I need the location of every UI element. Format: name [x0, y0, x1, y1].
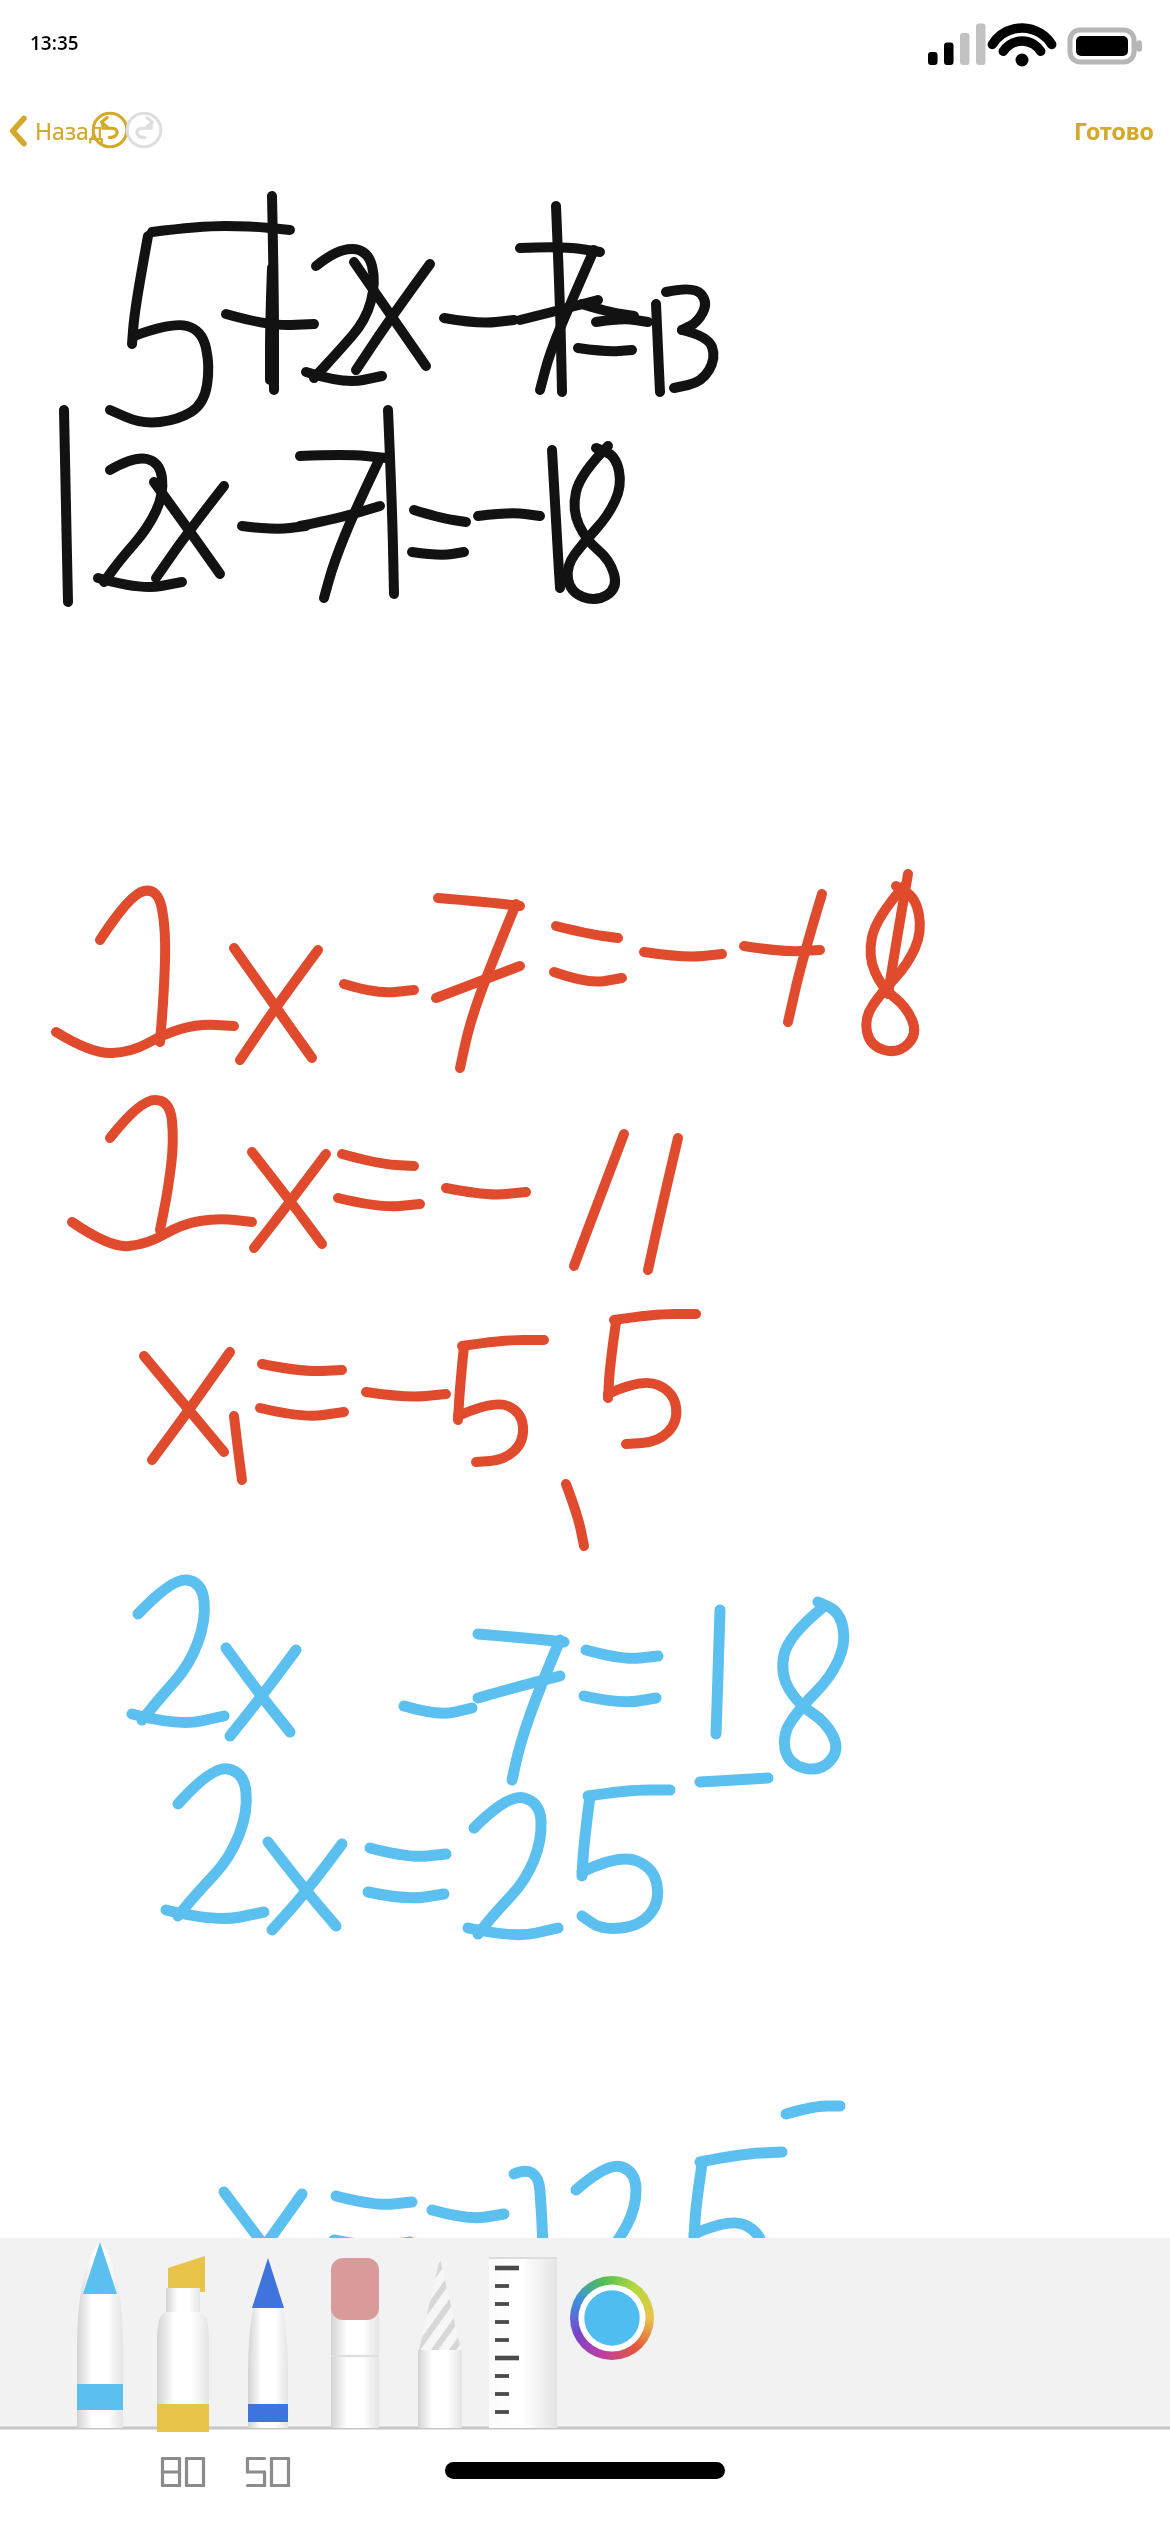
button[interactable]: Undo [82, 102, 138, 158]
staticText: Назад [35, 115, 103, 146]
staticText: 13:35 [30, 30, 79, 56]
staticText: Готово [1074, 115, 1154, 146]
button[interactable]: Назад [2, 105, 111, 156]
button[interactable]: Готово [1064, 105, 1164, 156]
button[interactable]: Redo [116, 102, 172, 158]
